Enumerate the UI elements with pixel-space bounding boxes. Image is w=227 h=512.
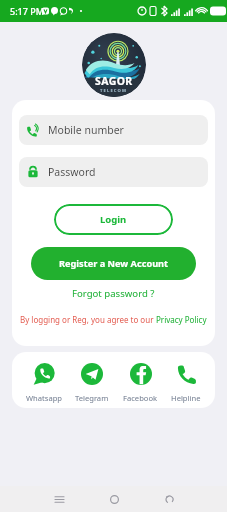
button[interactable]: Password bbox=[19, 157, 208, 187]
staticText: Helpline bbox=[171, 393, 201, 403]
button[interactable]: Forgot password ? bbox=[68, 285, 159, 302]
staticText: Facebook bbox=[123, 393, 158, 403]
staticText: 5:17 PM bbox=[10, 5, 44, 17]
staticText: By logging or Reg, you agree to our bbox=[20, 314, 156, 325]
staticText: Register a New Account bbox=[59, 257, 169, 270]
staticText: Telegram bbox=[75, 393, 109, 403]
button[interactable]: Recent apps bbox=[36, 486, 82, 512]
button[interactable]: Facebook bbox=[118, 363, 163, 403]
staticText: Forgot password ? bbox=[72, 287, 155, 300]
button[interactable]: Privacy Policy bbox=[156, 314, 207, 325]
button[interactable]: Whatsapp bbox=[21, 363, 67, 403]
button[interactable]: Mobile number bbox=[19, 115, 208, 145]
staticText: Password bbox=[48, 165, 96, 179]
button[interactable]: Login bbox=[54, 204, 173, 235]
button[interactable]: Back bbox=[146, 486, 192, 512]
button[interactable]: Telegram bbox=[70, 363, 114, 403]
staticText: Mobile number bbox=[48, 123, 124, 137]
button[interactable]: Home bbox=[91, 486, 137, 512]
staticText: Login bbox=[100, 213, 127, 226]
button[interactable]: Register a New Account bbox=[31, 247, 196, 280]
staticText: Whatsapp bbox=[26, 393, 62, 403]
button[interactable]: Helpline bbox=[166, 363, 206, 403]
staticText: TELECOM bbox=[100, 88, 128, 94]
staticText: SAGOR bbox=[95, 74, 133, 88]
staticText: Privacy Policy bbox=[156, 314, 207, 325]
